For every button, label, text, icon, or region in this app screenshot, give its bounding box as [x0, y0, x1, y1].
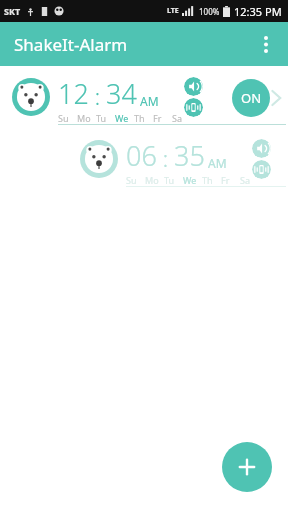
staticText: Th	[202, 174, 221, 186]
staticText: Fr	[153, 112, 172, 124]
staticText: ShakeIt-Alarm	[14, 33, 128, 56]
staticText: :	[157, 143, 174, 173]
staticText: ON	[241, 89, 262, 107]
staticText: 100%	[199, 6, 220, 17]
button[interactable]: Alarm sound	[184, 77, 203, 96]
staticText: We	[183, 174, 202, 186]
staticText: Sa	[172, 112, 191, 124]
button[interactable]: Vibration	[252, 160, 271, 179]
staticText: 06	[126, 137, 157, 174]
staticText: Sa	[240, 174, 259, 186]
staticText: We	[115, 112, 134, 124]
staticText: SKT	[4, 5, 21, 17]
button[interactable]: ON	[232, 79, 270, 117]
staticText: Th	[134, 112, 153, 124]
staticText: :	[89, 81, 106, 111]
staticText: Su	[126, 174, 145, 186]
button[interactable]: More options	[248, 26, 284, 62]
staticText: Tu	[96, 112, 115, 124]
staticText: 12:35 PM	[234, 4, 282, 19]
staticText: LTE	[167, 6, 179, 16]
staticText: 34	[106, 75, 137, 112]
staticText: Mo	[145, 174, 164, 186]
staticText: Mo	[77, 112, 96, 124]
staticText: AM	[140, 93, 159, 109]
staticText: 35	[174, 137, 205, 174]
button[interactable]: Alarm sound	[252, 139, 271, 158]
staticText: 12	[58, 75, 89, 112]
button[interactable]: Vibration	[184, 98, 203, 117]
staticText: Su	[58, 112, 77, 124]
button[interactable]: 06	[0, 131, 288, 193]
button[interactable]: Add alarm	[222, 442, 272, 492]
staticText: AM	[208, 155, 227, 171]
staticText: Fr	[221, 174, 240, 186]
staticText: Tu	[164, 174, 183, 186]
button[interactable]: 12	[0, 69, 288, 131]
